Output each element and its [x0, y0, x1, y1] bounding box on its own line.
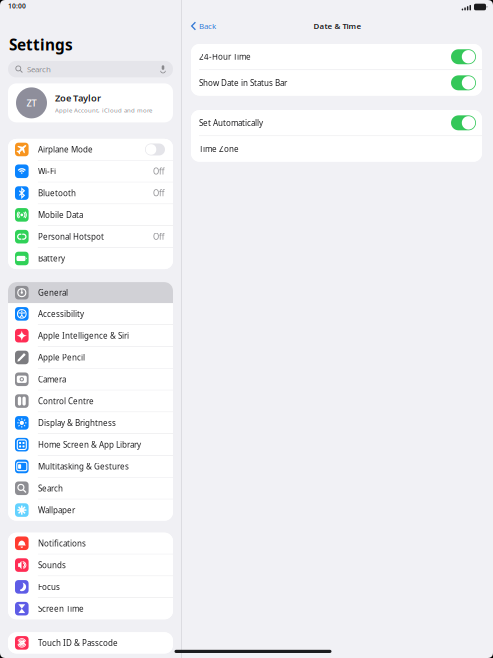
button[interactable]: Time Zone — [191, 136, 482, 162]
staticText: Screen Time — [38, 603, 84, 614]
staticText: Display & Brightness — [38, 417, 116, 428]
staticText: Search — [27, 64, 51, 74]
button[interactable]: Battery — [8, 248, 173, 269]
staticText: Back — [199, 21, 216, 31]
staticText: Set Automatically — [199, 117, 263, 128]
button[interactable]: Mobile Data — [8, 204, 173, 225]
staticText: Off — [153, 166, 165, 177]
button[interactable]: Apple Pencil — [8, 347, 173, 368]
staticText: Control Centre — [38, 396, 94, 406]
staticText: Wallpaper — [38, 505, 75, 515]
staticText: Notifications — [38, 538, 86, 549]
button[interactable]: Touch ID & Passcode — [8, 632, 173, 653]
button[interactable]: Home Screen & App Library — [8, 434, 173, 455]
staticText: Battery — [38, 253, 65, 264]
button[interactable]: Search — [8, 478, 173, 499]
button[interactable]: Multitasking & Gestures — [8, 456, 173, 477]
staticText: Accessibility — [38, 308, 84, 319]
staticText: ZT — [26, 96, 36, 109]
staticText: Time Zone — [199, 143, 239, 154]
staticText: Home Screen & App Library — [38, 439, 141, 450]
button[interactable]: Wi-Fi — [8, 161, 173, 182]
staticText: Show Date in Status Bar — [199, 77, 287, 88]
staticText: Camera — [38, 374, 66, 385]
staticText: Apple Pencil — [38, 352, 85, 363]
button[interactable]: Airplane Mode — [8, 139, 173, 160]
staticText: 24-Hour Time — [199, 51, 251, 62]
staticText: Airplane Mode — [38, 144, 93, 155]
staticText: General — [38, 287, 68, 298]
staticText: Apple Account, iCloud and more — [55, 106, 152, 114]
staticText: 10:00 — [8, 1, 26, 11]
staticText: Multitasking & Gestures — [38, 461, 129, 472]
staticText: Personal Hotspot — [38, 231, 104, 242]
button[interactable]: Display & Brightness — [8, 412, 173, 433]
staticText: Settings — [9, 34, 73, 55]
button[interactable]: Apple Intelligence & Siri — [8, 325, 173, 346]
staticText: Wi-Fi — [38, 166, 56, 177]
staticText: Date & Time — [313, 21, 361, 31]
button[interactable]: 24-Hour Time — [191, 44, 482, 69]
staticText: Touch ID & Passcode — [38, 637, 118, 648]
button[interactable]: Set Automatically — [191, 110, 482, 136]
staticText: Sounds — [38, 560, 66, 570]
button[interactable]: Bluetooth — [8, 182, 173, 204]
button[interactable]: Control Centre — [8, 390, 173, 412]
button[interactable]: ZT — [8, 83, 173, 122]
button[interactable]: Camera — [8, 369, 173, 390]
staticText: Search — [38, 483, 63, 494]
button[interactable]: Accessibility — [8, 303, 173, 324]
staticText: Zoe Taylor — [55, 91, 101, 104]
button[interactable]: Screen Time — [8, 598, 173, 619]
button[interactable]: Back — [182, 17, 216, 35]
staticText: Off — [153, 188, 165, 198]
staticText: Focus — [38, 581, 60, 592]
staticText: Mobile Data — [38, 209, 83, 220]
button[interactable]: Personal Hotspot — [8, 226, 173, 247]
staticText: Bluetooth — [38, 188, 76, 198]
button[interactable]: Sounds — [8, 554, 173, 576]
staticText: Apple Intelligence & Siri — [38, 330, 129, 341]
button[interactable]: Notifications — [8, 533, 173, 554]
button[interactable]: Wallpaper — [8, 499, 173, 521]
button[interactable]: Focus — [8, 576, 173, 597]
staticText: Off — [153, 231, 165, 242]
button[interactable]: General — [8, 282, 173, 303]
button[interactable]: Show Date in Status Bar — [191, 70, 482, 96]
